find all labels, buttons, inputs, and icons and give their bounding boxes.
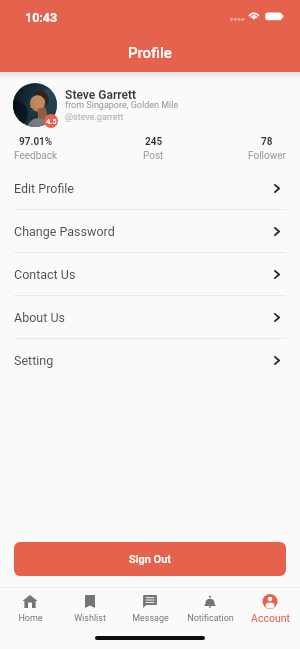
button[interactable]: Change Password xyxy=(0,210,300,253)
button[interactable]: Home xyxy=(0,588,60,624)
button[interactable]: Setting xyxy=(0,339,300,382)
staticText: 97.01% xyxy=(19,136,53,148)
button[interactable]: Edit Profile xyxy=(0,167,300,210)
staticText: 245 xyxy=(145,136,163,148)
staticText: Sign Out xyxy=(129,553,171,566)
staticText: Profile xyxy=(128,44,172,62)
staticText: Message xyxy=(132,613,169,624)
staticText: Edit Profile xyxy=(14,181,74,196)
staticText: Follower xyxy=(248,150,286,162)
staticText: @steve.garrett xyxy=(65,112,124,123)
button[interactable]: Contact Us xyxy=(0,253,300,296)
staticText: Setting xyxy=(14,353,54,368)
staticText: Home xyxy=(18,613,43,624)
button[interactable]: Notification xyxy=(180,588,240,624)
button[interactable]: Account xyxy=(240,588,300,624)
staticText: Feedback xyxy=(14,150,58,162)
staticText: Contact Us xyxy=(14,267,76,282)
staticText: Wishlist xyxy=(74,613,106,624)
staticText: 10:43 xyxy=(25,10,58,25)
staticText: 78 xyxy=(261,136,273,148)
staticText: 4.5 xyxy=(46,117,57,126)
button[interactable]: Sign Out xyxy=(14,542,286,576)
staticText: Notification xyxy=(187,613,234,624)
staticText: Account xyxy=(251,612,290,624)
button[interactable]: About Us xyxy=(0,296,300,339)
staticText: Steve Garrett xyxy=(65,88,137,102)
staticText: About Us xyxy=(14,310,65,325)
button[interactable]: Message xyxy=(120,588,180,624)
button[interactable]: Wishlist xyxy=(60,588,120,624)
staticText: Post xyxy=(143,150,164,162)
staticText: Change Password xyxy=(14,224,115,239)
staticText: from Singapore, Golden Mile xyxy=(65,100,179,111)
